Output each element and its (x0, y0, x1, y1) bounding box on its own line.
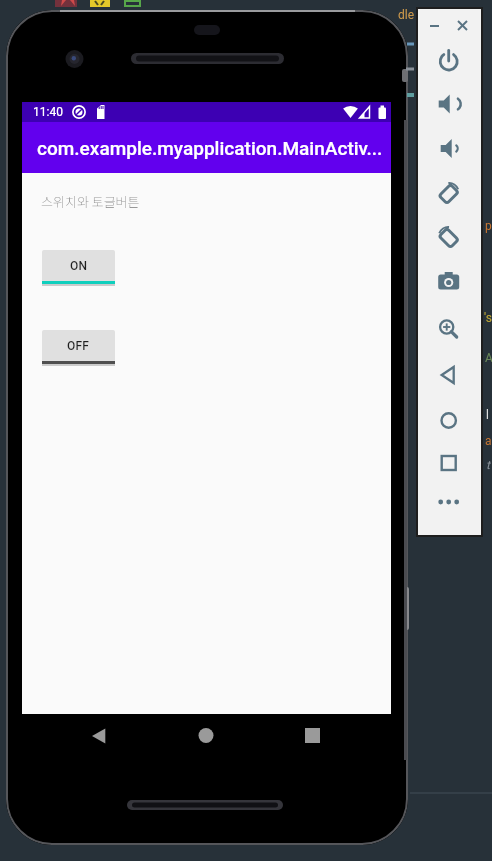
staticText: OFF (67, 339, 90, 353)
button[interactable] (290, 719, 335, 751)
button[interactable] (425, 19, 439, 33)
button[interactable] (416, 172, 483, 216)
staticText: com.example.myapplication.MainActiv... (37, 137, 383, 159)
staticText: t (486, 458, 490, 472)
button[interactable]: OFF (42, 330, 115, 366)
staticText: ON (70, 259, 88, 273)
staticText: dle (398, 8, 415, 22)
staticText: a (485, 434, 492, 448)
button[interactable] (416, 304, 483, 348)
button[interactable] (76, 719, 121, 751)
staticText: p (485, 219, 492, 233)
button[interactable] (416, 436, 483, 480)
button[interactable] (183, 719, 228, 751)
button[interactable] (416, 348, 483, 392)
button[interactable] (416, 40, 483, 84)
staticText: A (485, 351, 492, 365)
button[interactable] (455, 18, 470, 33)
button[interactable] (416, 392, 483, 436)
button[interactable] (416, 216, 483, 260)
button[interactable] (416, 84, 483, 128)
staticText: 11:40 (33, 105, 63, 119)
staticText: 's (484, 311, 492, 325)
staticText: 스위치와 토글버튼 (41, 192, 140, 211)
button[interactable] (416, 128, 483, 172)
button[interactable] (416, 260, 483, 304)
button[interactable]: ON (42, 250, 115, 286)
button[interactable] (416, 480, 483, 524)
staticText: l (486, 408, 489, 422)
